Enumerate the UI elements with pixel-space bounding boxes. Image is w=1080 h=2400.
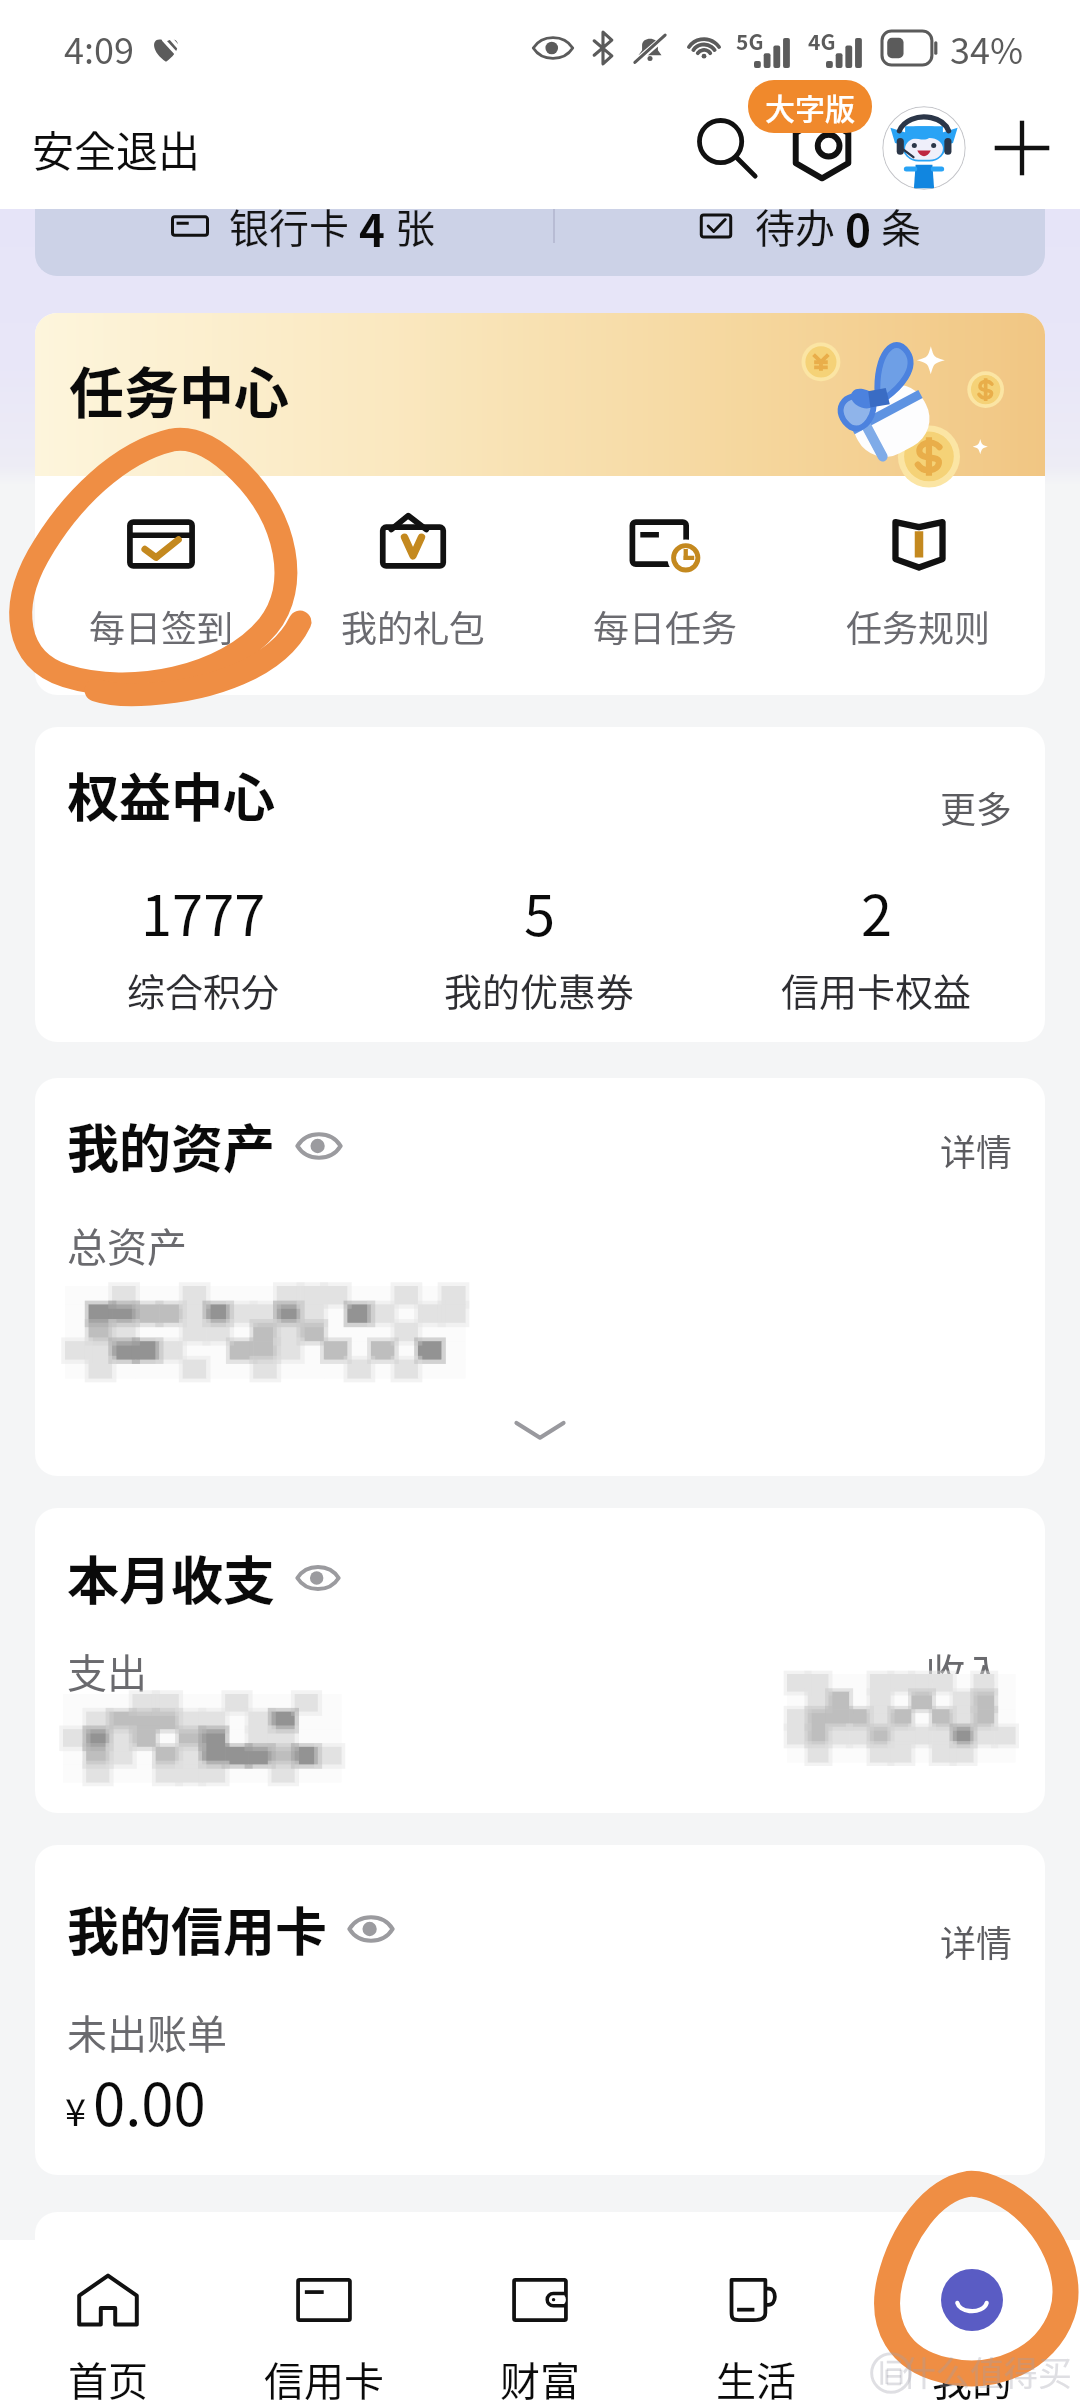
button[interactable]: 更多 xyxy=(940,781,1013,833)
staticText: 4 xyxy=(359,196,385,256)
staticText: 信用卡 xyxy=(264,2350,384,2400)
staticText: 任务规则 xyxy=(846,600,991,652)
button[interactable]: Search xyxy=(684,105,770,191)
staticText: 2 xyxy=(861,871,893,952)
staticText: 首页 xyxy=(68,2350,148,2400)
staticText: 任务中心 xyxy=(69,349,290,429)
button[interactable]: 待办 xyxy=(555,196,1045,256)
button[interactable]: 每日签到 xyxy=(35,476,287,652)
button[interactable]: Wealth xyxy=(432,2264,648,2400)
staticText: 0.00 xyxy=(93,2059,206,2143)
button[interactable]: Expand assets xyxy=(470,1398,610,1462)
staticText: 待办 xyxy=(755,197,835,255)
button[interactable]: 5 xyxy=(371,871,708,1017)
staticText: ¥ xyxy=(65,2082,87,2137)
staticText: 我的资产 xyxy=(67,1108,276,1183)
staticText: 条 xyxy=(881,197,921,255)
staticText: 银行卡 xyxy=(229,197,349,255)
button[interactable]: Credit card xyxy=(216,2264,432,2400)
staticText: 我的礼包 xyxy=(341,600,486,652)
button[interactable]: Hide total assets xyxy=(288,1119,350,1173)
staticText: 我的优惠券 xyxy=(444,962,635,1017)
staticText: 收入 xyxy=(925,1642,1005,1700)
staticText: 张 xyxy=(395,197,435,255)
staticText: 每日任务 xyxy=(593,600,738,652)
button[interactable]: 1777 xyxy=(35,871,371,1017)
staticText: 生活 xyxy=(716,2350,796,2400)
staticText: 1777 xyxy=(141,871,266,952)
staticText: 权益中心 xyxy=(67,757,276,832)
staticText: 总资产 xyxy=(67,1216,187,1274)
button[interactable]: Life xyxy=(648,2264,864,2400)
button[interactable]: Home xyxy=(0,2264,216,2400)
staticText: 什么值得买 xyxy=(902,2347,1072,2396)
button[interactable]: Hide monthly income and expenses xyxy=(288,1552,348,1604)
staticText: 我的信用卡 xyxy=(67,1891,328,1966)
staticText: 5 xyxy=(524,871,556,952)
staticText: 4G xyxy=(808,26,836,56)
button[interactable]: Profile xyxy=(864,2264,1080,2400)
button[interactable]: 详情 xyxy=(940,1124,1013,1176)
button[interactable]: 我的礼包 xyxy=(287,476,539,652)
button[interactable]: Hide credit card amount xyxy=(340,1902,402,1956)
button[interactable]: 任务规则 xyxy=(792,476,1045,652)
button[interactable]: 详情 xyxy=(940,1915,1013,1967)
button[interactable]: 2 xyxy=(708,871,1045,1017)
button[interactable]: 大字版 xyxy=(748,80,872,133)
staticText: 34% xyxy=(950,22,1024,74)
button[interactable]: 每日任务 xyxy=(539,476,792,652)
staticText: 大字版 xyxy=(765,85,855,128)
staticText: 支出 xyxy=(67,1642,147,1700)
button[interactable]: Add xyxy=(980,106,1064,190)
button[interactable]: Scan code xyxy=(782,106,866,190)
staticText: 5G xyxy=(736,26,764,56)
staticText: 未出账单 xyxy=(67,2003,227,2061)
staticText: 本月收支 xyxy=(67,1540,276,1615)
button[interactable]: 安全退出 xyxy=(32,118,201,179)
staticText: 信用卡权益 xyxy=(781,962,972,1017)
staticText: 我的 xyxy=(932,2350,1012,2400)
staticText: 每日签到 xyxy=(89,600,234,652)
staticText: 0 xyxy=(845,196,871,256)
button[interactable]: Customer service xyxy=(882,106,966,190)
staticText: 4:09 xyxy=(64,22,134,74)
staticText: 综合积分 xyxy=(127,962,280,1017)
staticText: 财富 xyxy=(500,2350,580,2400)
button[interactable]: 银行卡 xyxy=(49,196,553,256)
